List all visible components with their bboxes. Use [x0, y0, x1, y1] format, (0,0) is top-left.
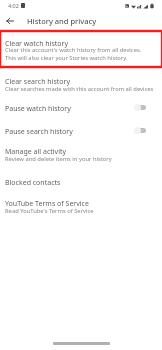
staticText: Clear this account's watch history from … — [5, 46, 142, 62]
button[interactable]: Manage all activity — [0, 146, 162, 177]
staticText: Read YouTube's Terms of Service — [5, 207, 94, 215]
button[interactable]: Clear watch history — [0, 31, 162, 67]
staticText: Pause search history — [5, 127, 73, 137]
staticText: History and privacy — [27, 16, 97, 26]
button[interactable]: Clear search history — [0, 73, 162, 100]
staticText: Clear search history — [5, 77, 71, 87]
button[interactable]: Toggle switch — [134, 102, 147, 113]
button[interactable]: Back — [0, 11, 20, 31]
staticText: Clear watch history — [5, 39, 68, 49]
staticText: Blocked contacts — [5, 178, 61, 188]
button[interactable]: Toggle switch — [134, 125, 147, 136]
button[interactable]: Blocked contacts — [0, 177, 162, 198]
button[interactable]: Pause search history — [0, 123, 162, 146]
staticText: YouTube Terms of Service — [5, 199, 89, 209]
staticText: Review and delete items in your history — [5, 155, 112, 163]
staticText: Clear searches made with this account fr… — [5, 85, 154, 93]
button[interactable]: YouTube Terms of Service — [0, 198, 162, 224]
button[interactable]: Pause watch history — [0, 100, 162, 123]
staticText: Manage all activity — [5, 147, 67, 157]
staticText: Pause watch history — [5, 104, 71, 114]
staticText: 4:02 — [8, 2, 19, 9]
